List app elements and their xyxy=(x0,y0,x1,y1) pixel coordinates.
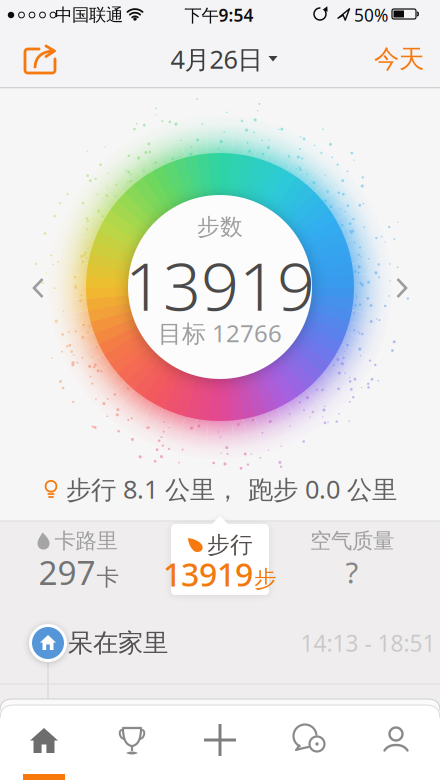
staticText: 下午9:54 xyxy=(184,3,253,26)
staticText: 14:13 - 18:51 xyxy=(300,628,435,658)
staticText: 50% xyxy=(354,3,388,26)
staticText: 步数 xyxy=(197,213,243,241)
button[interactable] xyxy=(19,41,63,81)
staticText: 卡 xyxy=(96,563,119,591)
button[interactable] xyxy=(88,706,176,776)
button[interactable] xyxy=(176,706,264,776)
staticText: 卡路里 xyxy=(54,528,117,554)
staticText: 目标 12766 xyxy=(158,317,282,349)
staticText: 今天 xyxy=(374,43,424,74)
button[interactable] xyxy=(18,258,58,318)
staticText: 中国联通 xyxy=(55,4,123,26)
button[interactable]: 4月26日 xyxy=(170,42,277,76)
staticText: 297 xyxy=(38,550,95,594)
staticText: 13919 xyxy=(163,553,253,595)
button[interactable]: 今天 xyxy=(374,43,424,74)
staticText: 步行 xyxy=(207,531,253,559)
button[interactable] xyxy=(264,706,352,776)
staticText: 13919 xyxy=(125,241,315,329)
button[interactable]: 步行 xyxy=(171,516,269,595)
button[interactable] xyxy=(0,706,88,776)
button[interactable]: 呆在家里 xyxy=(0,603,440,683)
button[interactable] xyxy=(382,258,422,318)
staticText: ? xyxy=(345,552,358,591)
staticText: 步 xyxy=(254,565,277,593)
staticText: 4月26日 xyxy=(170,42,262,76)
staticText: 呆在家里 xyxy=(68,627,168,658)
staticText: 空气质量 xyxy=(310,528,394,554)
staticText: 步行 8.1 公里， 跑步 0.0 公里 xyxy=(66,472,397,506)
button[interactable] xyxy=(352,706,440,776)
